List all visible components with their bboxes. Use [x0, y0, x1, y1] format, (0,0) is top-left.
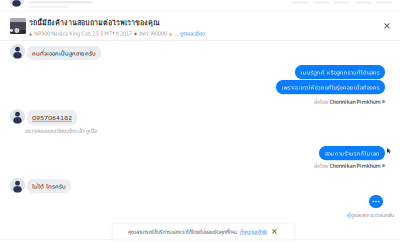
staticText: ตรวจสอบขอบเบียงแจ้งเเล้ว ดูเมื่อ	[25, 127, 97, 134]
staticText: ▲	[29, 31, 32, 36]
staticText: ✕	[271, 227, 278, 236]
staticText: เพราะฉะขาวให้ช่วยแก้ไขรุ่งคอยเมื่อต้องคร	[281, 83, 379, 91]
staticText: ไม่ได้ โทรครับ	[32, 182, 66, 190]
staticText: ส่งโดย	[314, 162, 328, 169]
button[interactable]: Dismiss	[270, 227, 279, 236]
staticText: Chonnikan Pimkhum	[329, 162, 380, 169]
staticText: เมนร์ลูกค้ หรือลูกทราบก้ไดัแลคร	[300, 68, 379, 76]
staticText: รถนี้มียังค้างานสอบถามต่อไรพเราของคุณ	[29, 17, 160, 28]
staticText: ◆	[134, 31, 137, 36]
staticText: สอบถามร้านรกก็ไมเลด	[324, 149, 379, 157]
staticText: ราคา: W0000	[139, 30, 167, 37]
staticText: NP300 Navara King Cab 2.5 S MT* ปี 2017	[34, 30, 132, 37]
staticText: ✕	[383, 21, 391, 31]
button[interactable]: Close	[382, 21, 392, 31]
button[interactable]: New message	[369, 195, 383, 208]
button[interactable]: ทำความเข้าใจ	[240, 228, 267, 235]
staticText: ส่งโดย	[314, 98, 328, 105]
staticText: คุณสามารถใช้บริการของเราได้โดยไม่ยอมรับค…	[128, 228, 237, 235]
staticText: …	[174, 30, 178, 37]
staticText: ผู้ดูแลเพจ จะตอบกลับ	[347, 211, 394, 219]
staticText: คนที่จะออกเป็นลูกชายครับ	[32, 49, 96, 57]
staticText: ดูรายละเอียด	[180, 30, 205, 37]
staticText: ทำความเข้าใจ	[240, 228, 267, 235]
staticText: Chonnikan Pimkhum	[329, 98, 380, 105]
staticText: ▲	[169, 31, 172, 36]
staticText: 0957064182	[32, 113, 72, 122]
